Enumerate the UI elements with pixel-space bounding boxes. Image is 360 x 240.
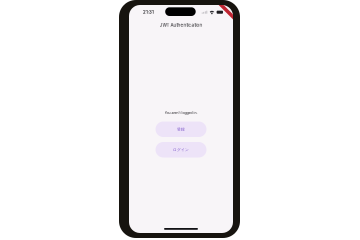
staticText: 登録 <box>177 127 185 132</box>
button[interactable]: 登録 <box>155 121 206 137</box>
staticText: You aren't logged in. <box>164 111 197 115</box>
button[interactable]: ログイン <box>155 142 206 157</box>
staticText: 21:31 <box>143 10 154 15</box>
staticText: ログイン <box>173 147 189 152</box>
staticText: JWT Authentication <box>159 22 202 28</box>
